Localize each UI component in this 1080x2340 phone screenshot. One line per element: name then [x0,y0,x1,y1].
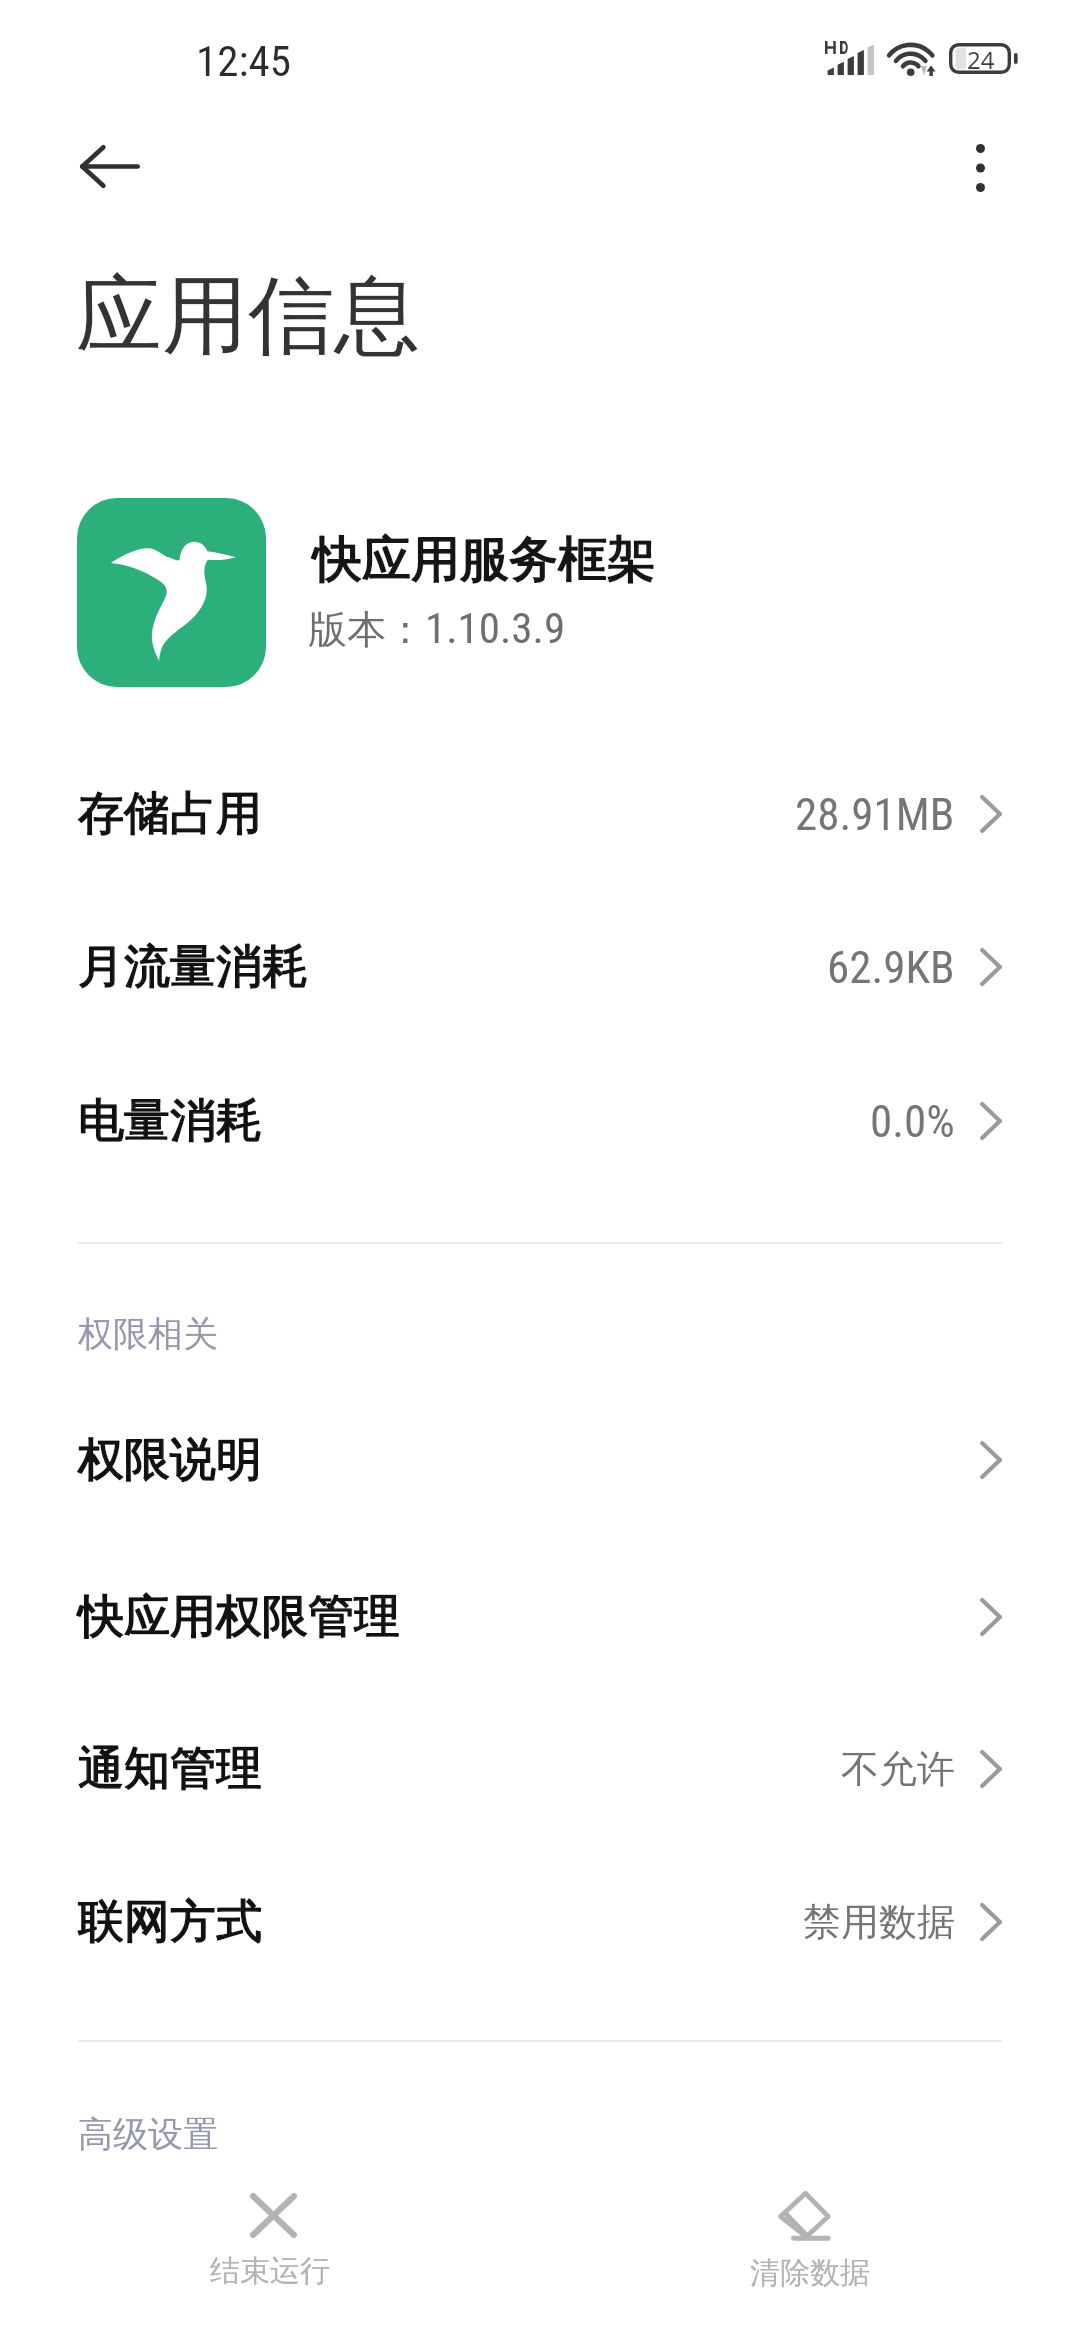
staticText: 清除数据 [750,2254,870,2292]
staticText: 24 [967,43,995,74]
staticText: 电量消耗 [78,1092,262,1150]
staticText: 权限说明 [78,1431,262,1489]
other: App icon [77,498,266,687]
staticText: 高级设置 [78,2112,218,2156]
staticText: 版本： [308,605,425,654]
staticText: 电量消耗 [78,1092,262,1150]
button[interactable]: 月流量消耗 [0,891,1080,1043]
button[interactable]: 快应用权限管理 [0,1541,1080,1693]
staticText: 1.10.3.9 [425,603,566,653]
staticText: 通知管理 [78,1740,262,1798]
button[interactable]: 结束运行 [0,2142,540,2340]
button[interactable]: More options [932,120,1028,216]
staticText: 0.0% [870,1095,955,1148]
staticText: 不允许 [841,1745,955,1793]
staticText: 28.91MB [795,788,955,841]
staticText: 联网方式 [78,1893,262,1951]
staticText: 12:45 [196,36,291,86]
staticText: 存储占用 [78,785,262,843]
button[interactable]: 通知管理 [0,1693,1080,1845]
staticText: 月流量消耗 [78,938,308,996]
button[interactable]: 电量消耗 [0,1045,1080,1197]
staticText: 快应用服务框架 [313,529,656,591]
staticText: 快应用权限管理 [78,1588,400,1646]
button[interactable]: 清除数据 [540,2142,1080,2340]
staticText: 快应用权限管理 [78,1588,400,1646]
button[interactable]: 存储占用 [0,738,1080,890]
staticText: 应用信息 [76,262,420,370]
staticText: 存储占用 [78,785,262,843]
button[interactable]: Back [62,118,158,214]
staticText: 权限相关 [78,1312,218,1356]
staticText: 结束运行 [210,2252,330,2290]
button[interactable]: 联网方式 [0,1846,1080,1998]
staticText: 通知管理 [78,1740,262,1798]
staticText: 权限说明 [78,1431,262,1489]
staticText: 月流量消耗 [78,938,308,996]
staticText: 禁用数据 [803,1898,955,1946]
staticText: 62.9KB [827,941,955,994]
staticText: 快应用服务框架 [313,529,656,591]
button[interactable]: 权限说明 [0,1384,1080,1536]
staticText: 联网方式 [78,1893,262,1951]
